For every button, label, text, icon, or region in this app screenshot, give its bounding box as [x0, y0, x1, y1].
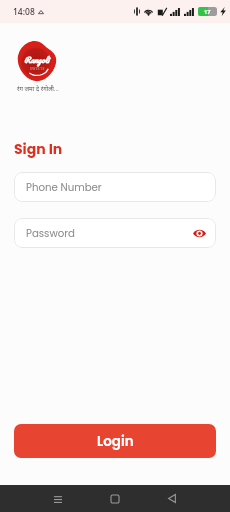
button[interactable]: Home	[101, 485, 129, 512]
staticText: 17	[204, 8, 211, 15]
staticText: Sign In	[14, 139, 63, 159]
staticText: Rangoli	[24, 53, 50, 66]
staticText: Phone Number	[26, 180, 102, 194]
button[interactable]: Recent apps	[44, 485, 72, 512]
staticText: Login	[97, 432, 134, 451]
button[interactable]: Password	[14, 218, 216, 248]
staticText: 14:08	[13, 6, 35, 18]
staticText: Password	[26, 226, 75, 240]
staticText: SWEETS	[30, 67, 45, 71]
button[interactable]: Back	[158, 485, 186, 512]
button[interactable]: Login	[14, 424, 216, 458]
button[interactable]: Phone Number	[14, 172, 216, 202]
button[interactable]: Show password	[191, 225, 207, 241]
staticText: रंग जमा दे रंगोली...	[17, 86, 59, 94]
